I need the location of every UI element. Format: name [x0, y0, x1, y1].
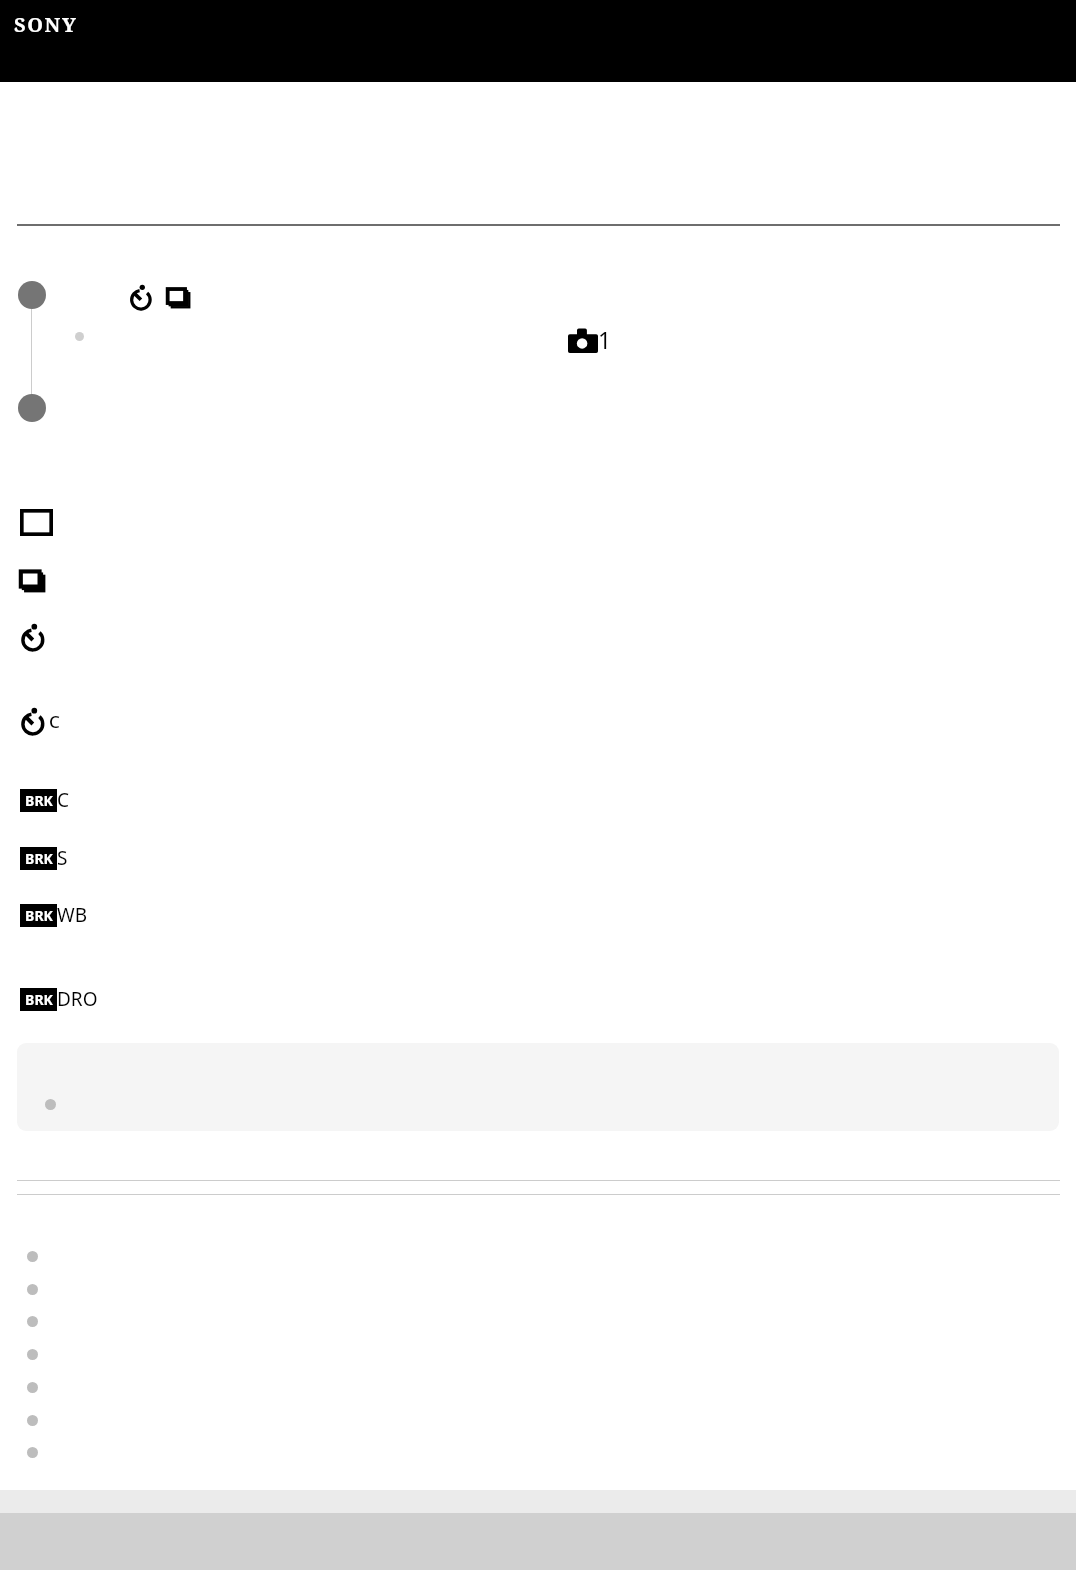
button[interactable]: Related topic 3 [27, 1316, 38, 1327]
button[interactable]: Step [18, 394, 46, 422]
button[interactable]: Related topic 1 [27, 1251, 38, 1262]
button[interactable]: Related topic 7 [27, 1447, 38, 1458]
button[interactable]: Sony home [14, 11, 78, 38]
staticText: S [57, 845, 68, 871]
staticText: C [57, 787, 70, 813]
staticText: BRK [25, 791, 53, 810]
button[interactable]: Related topic 6 [27, 1415, 38, 1426]
staticText: BRK [25, 990, 53, 1009]
button[interactable]: Related topic 4 [27, 1349, 38, 1360]
button[interactable]: Related topic 2 [27, 1284, 38, 1295]
staticText: BRK [25, 906, 53, 925]
staticText: WB [57, 902, 88, 928]
button[interactable]: Step [18, 281, 46, 309]
staticText: SONY [14, 11, 78, 38]
button[interactable]: Related topic 5 [27, 1382, 38, 1393]
staticText: DRO [57, 986, 98, 1012]
staticText: BRK [25, 849, 53, 868]
staticText: C [49, 710, 60, 733]
staticText: 1 [598, 324, 612, 355]
